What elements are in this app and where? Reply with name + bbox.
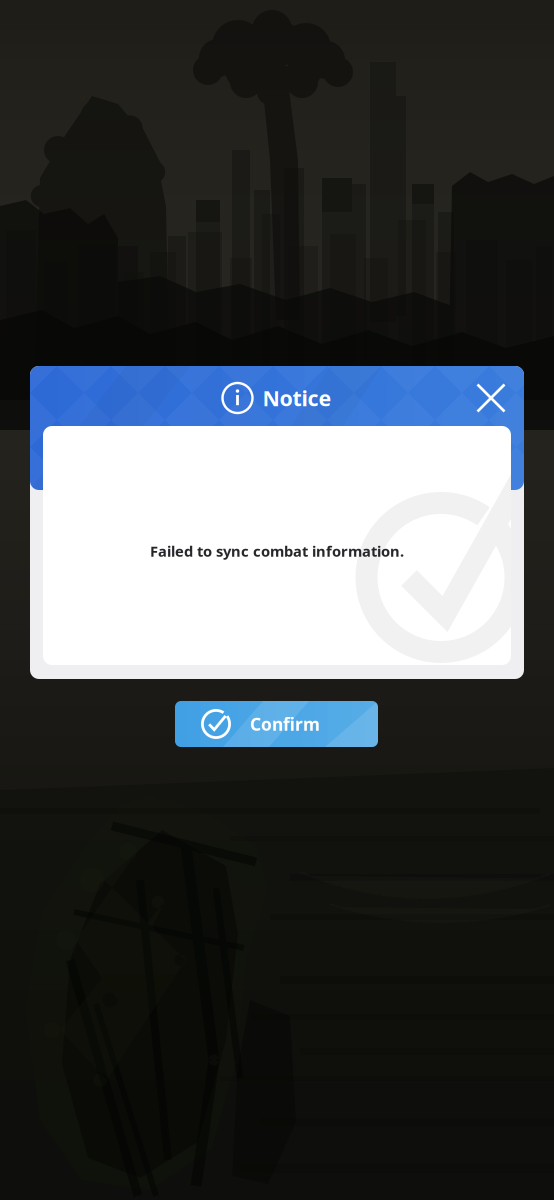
- staticText: Confirm: [250, 712, 320, 735]
- button[interactable]: Confirm: [175, 701, 378, 747]
- button[interactable]: Close: [467, 374, 515, 422]
- staticText: Failed to sync combat information.: [150, 541, 404, 561]
- staticText: Notice: [262, 384, 331, 412]
